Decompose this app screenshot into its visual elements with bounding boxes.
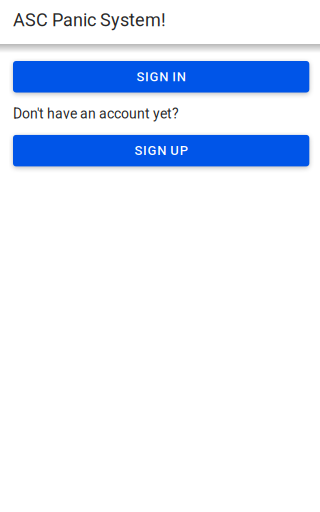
- staticText: SIGN IN: [136, 69, 186, 84]
- staticText: SIGN UP: [134, 143, 188, 158]
- button[interactable]: SIGN UP: [13, 135, 309, 166]
- button[interactable]: SIGN IN: [13, 61, 309, 92]
- staticText: ASC Panic System!: [13, 9, 166, 31]
- staticText: Don't have an account yet?: [13, 105, 179, 122]
